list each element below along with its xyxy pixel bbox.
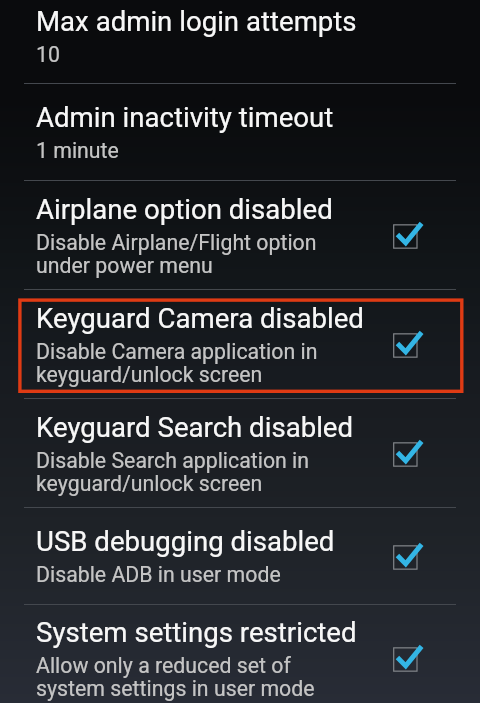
staticText: Disable Search application in keyguard/u… (36, 450, 310, 496)
staticText: Keyguard Camera disabled (36, 302, 364, 334)
button[interactable]: Keyguard Camera disabled checkbox, check… (393, 290, 480, 398)
button[interactable]: Airplane option disabled (0, 181, 480, 289)
staticText: Disable Airplane/Flight option under pow… (36, 232, 317, 278)
button[interactable]: System settings restricted (0, 605, 480, 703)
staticText: Admin inactivity timeout (36, 101, 334, 133)
button[interactable]: Keyguard Camera disabled (0, 290, 480, 398)
button[interactable]: Keyguard Search disabled checkbox, check… (393, 399, 480, 507)
staticText: 10 (36, 44, 60, 67)
button[interactable]: Keyguard Search disabled (0, 399, 480, 507)
staticText: Disable Camera application in keyguard/u… (36, 341, 318, 387)
staticText: USB debugging disabled (36, 525, 335, 557)
staticText: Max admin login attempts (36, 5, 357, 37)
staticText: Keyguard Search disabled (36, 411, 354, 443)
staticText: Allow only a reduced set of system setti… (36, 655, 315, 701)
button[interactable]: Admin inactivity timeout (0, 84, 480, 180)
button[interactable]: USB debugging disabled (0, 508, 480, 604)
staticText: 1 minute (36, 140, 119, 163)
button[interactable]: Max admin login attempts (0, 0, 480, 83)
button[interactable]: System settings restricted checkbox, che… (393, 605, 480, 703)
staticText: System settings restricted (36, 616, 357, 648)
button[interactable]: USB debugging disabled checkbox, checked (393, 508, 480, 604)
staticText: Disable ADB in user mode (36, 564, 281, 587)
staticText: Airplane option disabled (36, 193, 333, 225)
button[interactable]: Airplane option disabled checkbox, check… (393, 181, 480, 289)
